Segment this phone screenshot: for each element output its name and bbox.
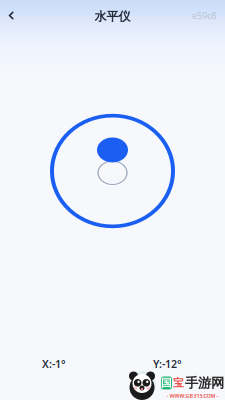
staticText: 国 <box>161 376 172 389</box>
staticText: - WWW.GB315.COM - <box>166 392 218 399</box>
staticText: Y:-12° <box>153 357 182 371</box>
button[interactable]: Back <box>0 0 24 31</box>
staticText: 水平仪 <box>94 9 130 24</box>
staticText: 宝 <box>173 376 184 389</box>
staticText: e59c8 <box>192 9 216 22</box>
staticText: X:-1° <box>42 357 66 371</box>
staticText: 手游网 <box>185 375 224 391</box>
